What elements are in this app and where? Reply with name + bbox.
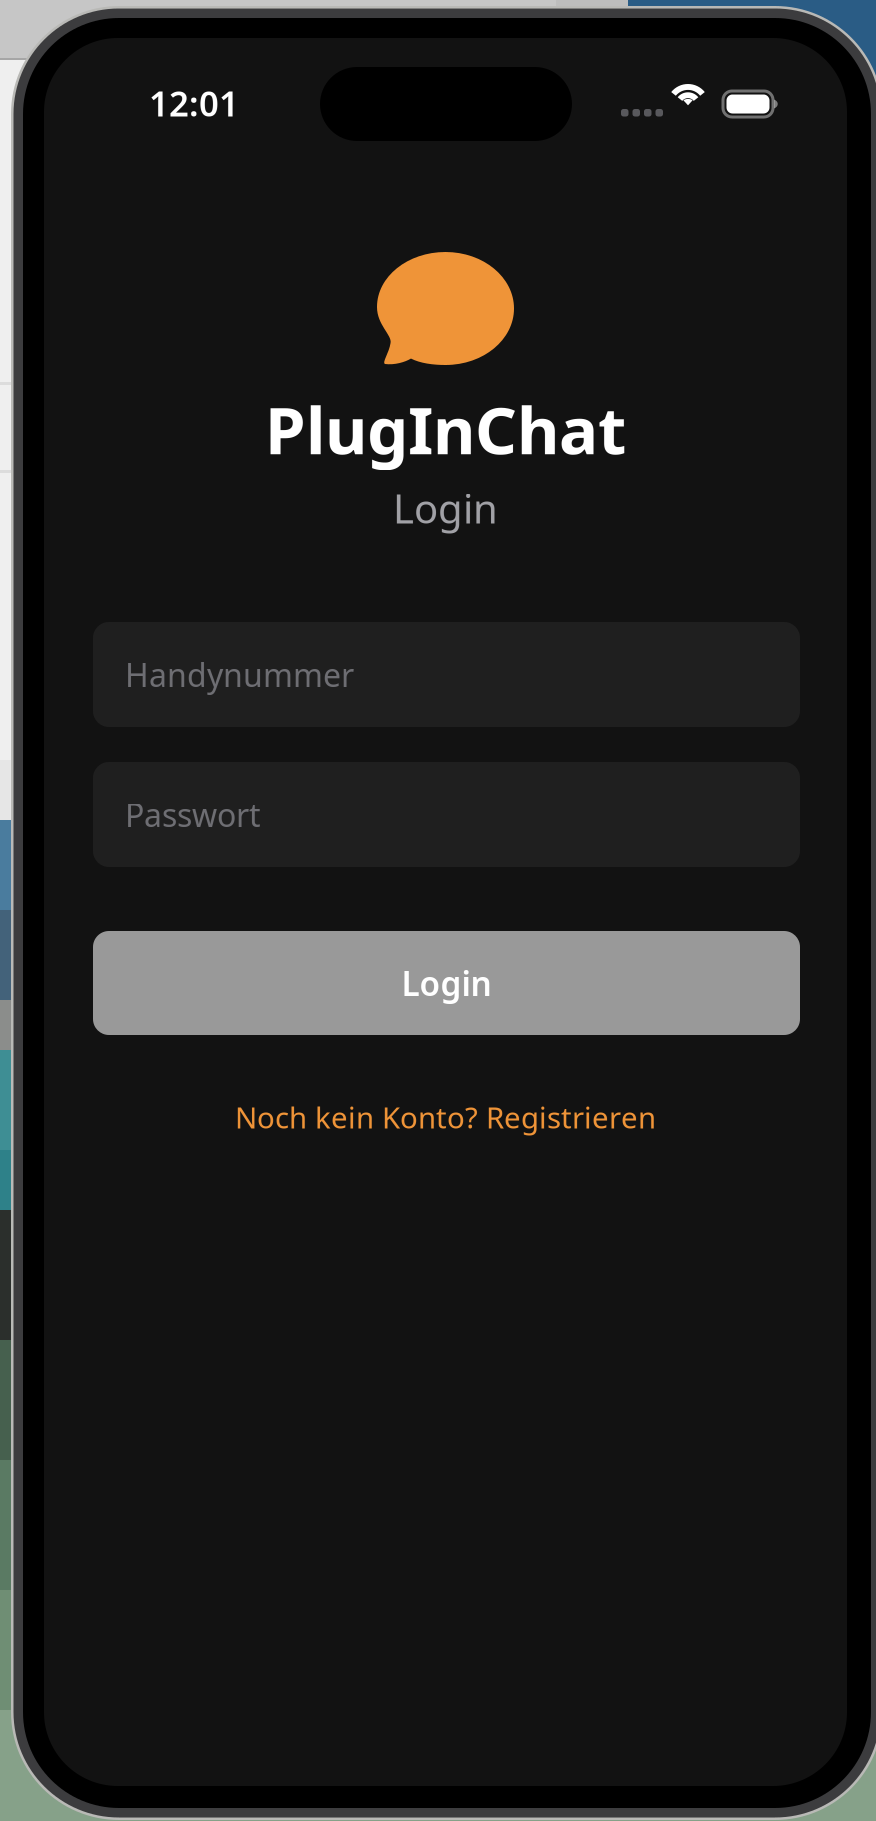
staticText: Handynummer (125, 653, 354, 696)
staticText: Login (401, 961, 491, 1005)
staticText: Noch kein Konto? Registrieren (235, 1097, 656, 1136)
staticText: Login (393, 481, 498, 534)
button[interactable]: Handynummer (93, 622, 800, 727)
button[interactable]: Passwort (93, 762, 800, 867)
staticText: Passwort (125, 793, 261, 836)
staticText: 12:01 (149, 80, 239, 126)
button[interactable]: Noch kein Konto? Registrieren (44, 1091, 847, 1143)
staticText: PlugInChat (265, 386, 626, 472)
button[interactable]: Login (93, 931, 800, 1035)
